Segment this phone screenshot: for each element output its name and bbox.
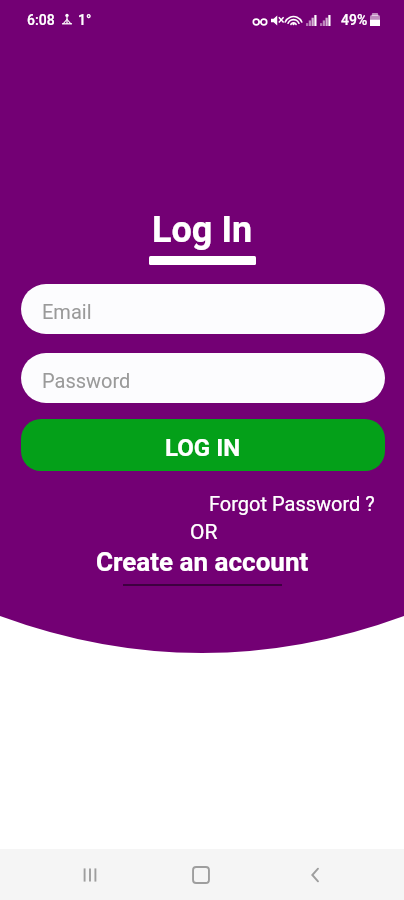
staticText: Create an account bbox=[96, 547, 309, 577]
staticText: 49% bbox=[341, 12, 368, 28]
button[interactable]: Home bbox=[171, 849, 231, 900]
button[interactable]: Password bbox=[21, 353, 385, 403]
staticText: 1° bbox=[78, 12, 92, 28]
button[interactable]: Recent apps bbox=[60, 849, 120, 900]
button[interactable]: Email bbox=[21, 284, 385, 334]
staticText: LOG IN bbox=[165, 434, 241, 462]
staticText: 6:08 bbox=[27, 12, 55, 28]
button[interactable]: Create an account bbox=[96, 547, 309, 577]
staticText: Password bbox=[42, 369, 131, 392]
button[interactable]: LOG IN bbox=[21, 419, 385, 471]
staticText: Forgot Password ? bbox=[209, 492, 375, 515]
button[interactable]: Back bbox=[285, 849, 345, 900]
staticText: Log In bbox=[152, 209, 253, 251]
staticText: OR bbox=[190, 520, 218, 545]
button[interactable]: Forgot Password ? bbox=[209, 492, 375, 515]
staticText: Email bbox=[42, 300, 92, 323]
